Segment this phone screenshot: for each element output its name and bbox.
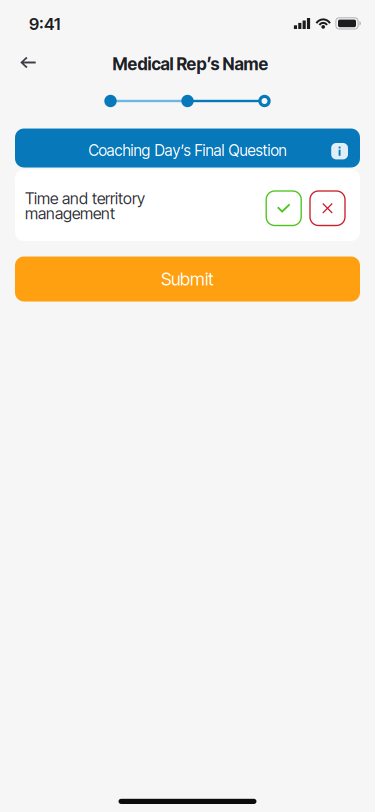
button[interactable]: Information (331, 140, 348, 156)
staticText: Time and territory (25, 189, 145, 208)
staticText: management (25, 204, 115, 223)
staticText: Coaching Day’s Final Question (89, 141, 287, 160)
button[interactable]: Back (6, 44, 50, 78)
button[interactable]: No (310, 188, 345, 222)
staticText: Submit (161, 268, 214, 290)
staticText: Medical Rep’s Name (112, 54, 268, 74)
button[interactable]: Submit (0, 256, 375, 301)
button[interactable]: Yes (266, 188, 301, 222)
staticText: 9:41 (29, 14, 60, 34)
